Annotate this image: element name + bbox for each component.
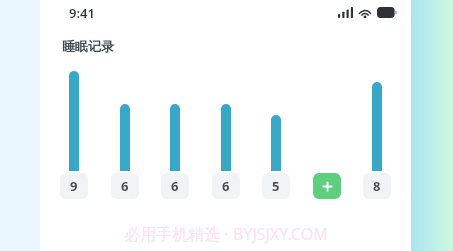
button[interactable]: 5 bbox=[262, 173, 290, 199]
button[interactable]: 6 bbox=[208, 71, 244, 199]
button[interactable]: 6 bbox=[111, 173, 139, 199]
button[interactable]: 9 bbox=[60, 173, 88, 199]
button[interactable]: Add sleep record bbox=[313, 173, 341, 199]
button[interactable]: 8 bbox=[359, 71, 395, 199]
staticText: 必用手机精选 · BYJSJXY.COM bbox=[124, 223, 328, 245]
staticText: 6 bbox=[222, 177, 230, 195]
staticText: 睡眠记录 bbox=[62, 38, 114, 54]
button[interactable]: 6 bbox=[157, 71, 193, 199]
staticText: 8 bbox=[373, 177, 381, 195]
button[interactable]: Add sleep record bbox=[309, 71, 345, 199]
staticText: 9:41 bbox=[69, 4, 95, 22]
staticText: 9 bbox=[70, 177, 78, 195]
staticText: 6 bbox=[121, 177, 129, 195]
button[interactable]: 8 bbox=[363, 173, 391, 199]
staticText: 6 bbox=[171, 177, 179, 195]
button[interactable]: 9 bbox=[56, 71, 92, 199]
button[interactable]: 6 bbox=[107, 71, 143, 199]
button[interactable]: 5 bbox=[258, 71, 294, 199]
button[interactable]: 6 bbox=[161, 173, 189, 199]
staticText: 5 bbox=[272, 177, 280, 195]
button[interactable]: 6 bbox=[212, 173, 240, 199]
